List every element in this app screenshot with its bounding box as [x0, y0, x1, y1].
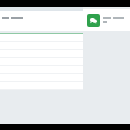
button[interactable] [0, 34, 83, 42]
button[interactable] [0, 74, 83, 82]
button[interactable] [0, 11, 83, 31]
button[interactable] [0, 50, 83, 58]
button[interactable] [0, 58, 83, 66]
button[interactable]: Chat [83, 9, 130, 31]
button[interactable] [0, 42, 83, 50]
other: Chat [87, 14, 100, 27]
button[interactable] [0, 82, 83, 90]
button[interactable] [0, 66, 83, 74]
